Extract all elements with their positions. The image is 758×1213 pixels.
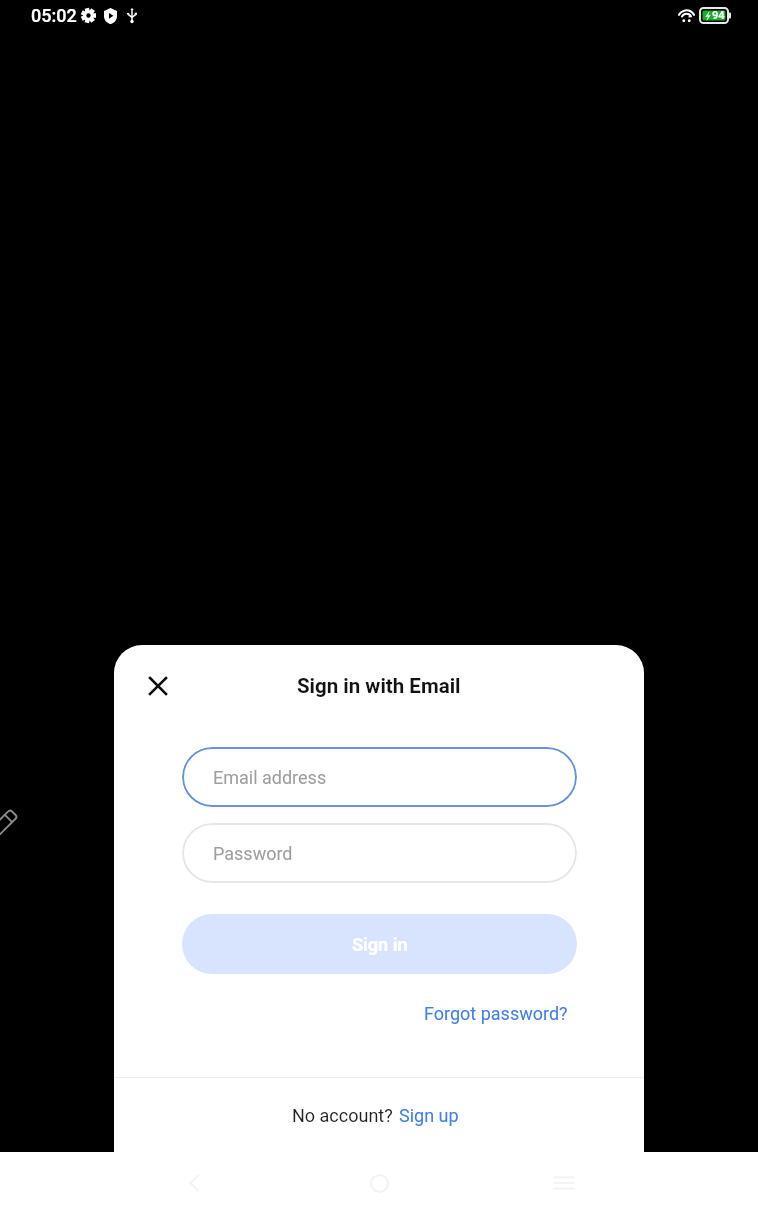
staticText: Password xyxy=(213,843,293,864)
button[interactable]: Close xyxy=(136,664,180,708)
button[interactable]: Password xyxy=(182,823,577,883)
staticText: Forgot password? xyxy=(424,1003,568,1024)
staticText: No account? xyxy=(292,1105,393,1126)
staticText: Email address xyxy=(213,767,327,788)
button[interactable]: Edit xyxy=(0,790,30,860)
staticText: Sign in xyxy=(352,934,408,955)
button[interactable]: Email address xyxy=(182,747,577,807)
staticText: Sign up xyxy=(399,1105,459,1126)
button[interactable]: Sign up xyxy=(399,1105,459,1126)
staticText: Sign in with Email xyxy=(297,674,461,698)
staticText: 94 xyxy=(712,9,725,22)
button[interactable]: Sign in xyxy=(182,914,577,974)
button[interactable]: Forgot password? xyxy=(424,1003,568,1024)
staticText: 05:02 xyxy=(31,5,77,26)
